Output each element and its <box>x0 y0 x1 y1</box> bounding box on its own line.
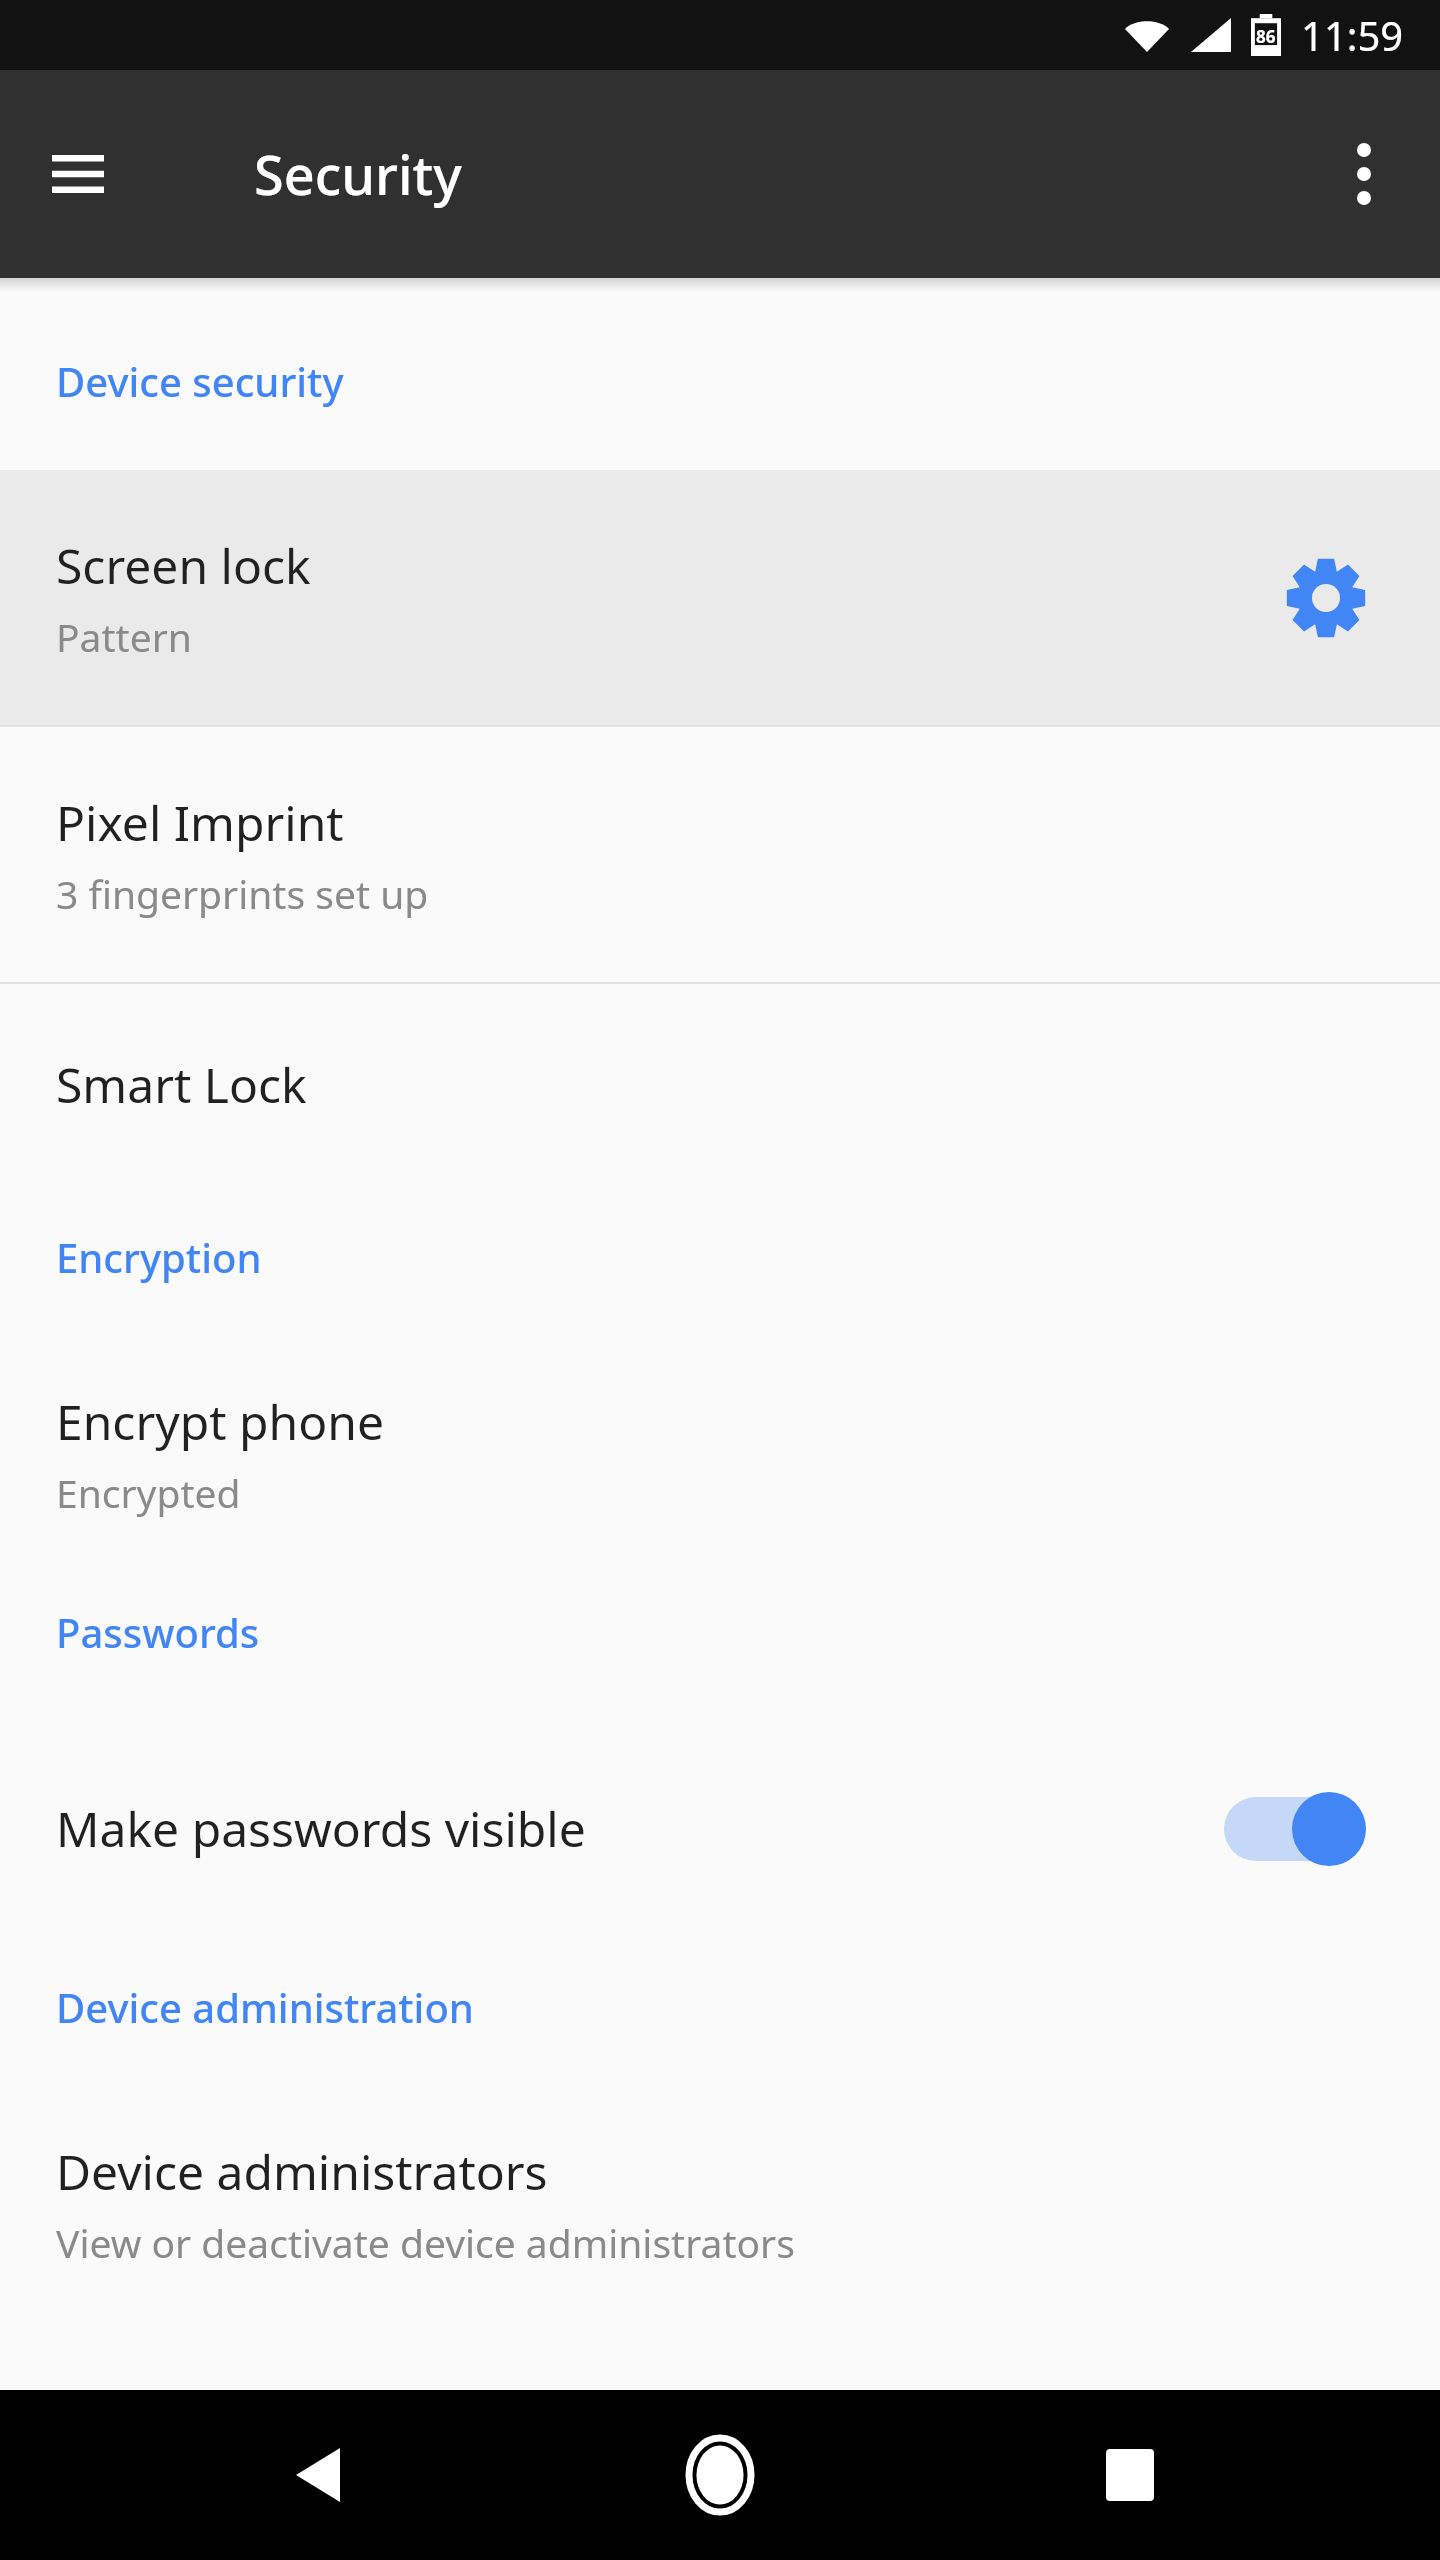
button[interactable]: Smart Lock <box>0 984 1440 1184</box>
staticText: 86 <box>1256 25 1276 48</box>
button[interactable]: Device administrators <box>0 2096 1440 2311</box>
button[interactable]: Encrypt phone <box>0 1346 1440 1561</box>
button[interactable]: Back <box>258 2415 378 2535</box>
staticText: Encrypted <box>56 1466 241 1519</box>
button[interactable]: Pixel Imprint <box>0 727 1440 982</box>
staticText: Make passwords visible <box>56 1796 1218 1861</box>
button[interactable]: Recent apps <box>1070 2415 1190 2535</box>
staticText: 3 fingerprints set up <box>56 867 429 920</box>
button[interactable]: Make passwords visible <box>0 1721 1440 1936</box>
staticText: Encryption <box>56 1230 262 1284</box>
button[interactable]: Screen lock settings <box>1268 540 1384 656</box>
button[interactable]: Screen lock <box>0 470 1440 725</box>
button[interactable]: Open navigation menu <box>30 126 126 222</box>
staticText: 11:59 <box>1301 8 1404 62</box>
staticText: View or deactivate device administrators <box>56 2216 795 2269</box>
staticText: Device security <box>56 354 344 408</box>
staticText: Device administrators <box>56 2139 548 2204</box>
staticText: Passwords <box>56 1605 260 1659</box>
button[interactable]: Make passwords visible, on <box>1218 1784 1378 1874</box>
staticText: Screen lock <box>56 533 311 598</box>
button[interactable]: More options <box>1316 126 1412 222</box>
staticText: Encrypt phone <box>56 1389 384 1454</box>
staticText: Smart Lock <box>56 1052 307 1117</box>
staticText: Security <box>254 137 462 211</box>
staticText: Pixel Imprint <box>56 790 344 855</box>
button[interactable]: Home <box>660 2415 780 2535</box>
staticText: Device administration <box>56 1980 474 2034</box>
staticText: Pattern <box>56 610 192 663</box>
